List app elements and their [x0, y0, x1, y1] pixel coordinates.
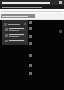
- button[interactable]: [0, 5, 64, 9]
- other: Item icon 3: [5, 40, 8, 42]
- button[interactable]: Section icon: [4, 22, 26, 26]
- button[interactable]: Item icon 2: [5, 34, 25, 37]
- button[interactable]: Item icon 1: [5, 28, 25, 31]
- button[interactable]: Menu: [0, 0, 64, 5]
- button[interactable]: [1, 14, 35, 18]
- button[interactable]: Item icon 3: [5, 40, 25, 42]
